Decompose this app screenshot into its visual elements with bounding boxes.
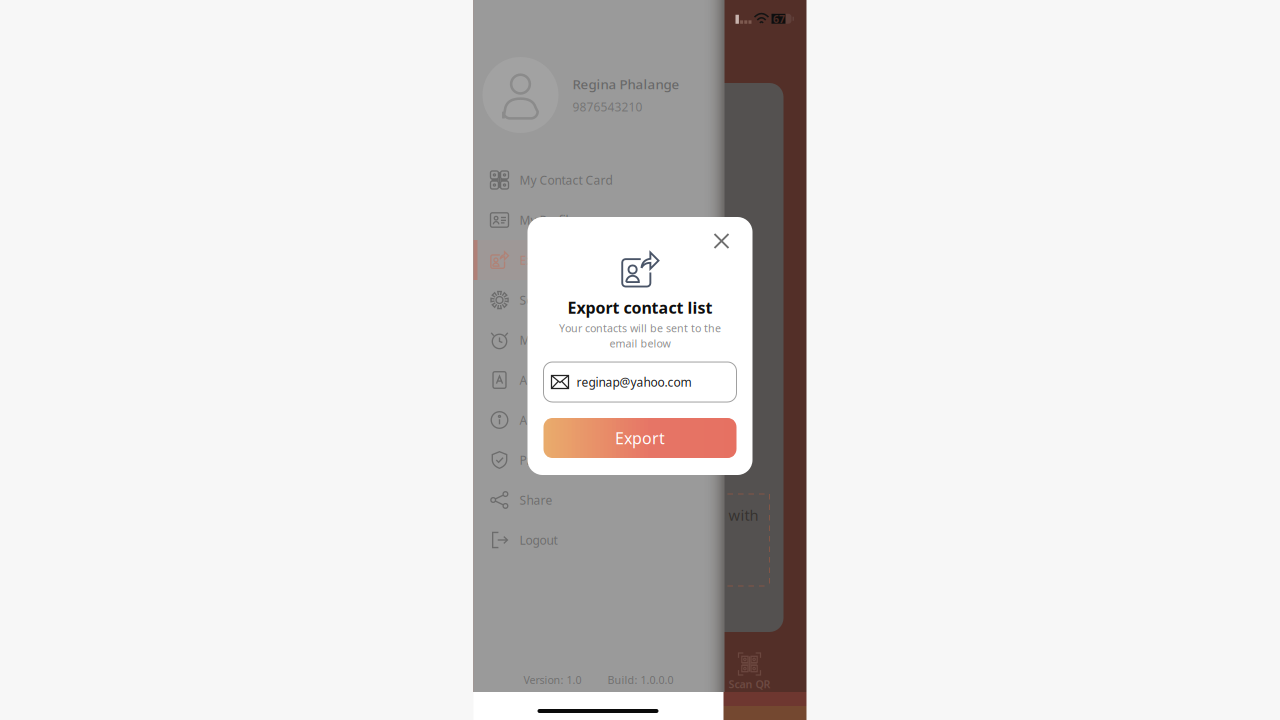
staticText: Scan QR — [728, 677, 770, 691]
staticText: Your contacts will be sent to the — [559, 321, 721, 335]
button[interactable]: App Tutorial — [473, 360, 723, 400]
staticText: Logout — [519, 532, 557, 548]
staticText: 67 — [773, 12, 785, 26]
button[interactable]: My Reminders — [473, 320, 723, 360]
staticText: 9876543210 — [572, 99, 642, 115]
staticText: Privacy Policy — [519, 452, 594, 468]
staticText: My Contact Card — [519, 172, 612, 188]
staticText: Share — [519, 492, 552, 508]
staticText: Build: 1.0.0.0 — [607, 673, 673, 687]
button[interactable]: My Profile — [473, 200, 723, 240]
button[interactable]: My Contact Card — [473, 160, 723, 200]
button[interactable]: Settings — [473, 280, 723, 320]
staticText: My Profile — [519, 212, 575, 228]
button[interactable]: About Us — [473, 400, 723, 440]
staticText: Settings — [519, 292, 564, 308]
button[interactable]: Logout — [473, 520, 723, 560]
staticText: Version: 1.0 — [523, 673, 581, 687]
button[interactable]: Close dialog — [706, 226, 736, 256]
staticText: Share your contacts with — [589, 505, 758, 525]
staticText: reginap@yahoo.com — [576, 374, 691, 390]
staticText: Export — [615, 427, 665, 449]
staticText: Export contact list — [567, 297, 712, 318]
staticText: App Tutorial — [519, 372, 586, 388]
button[interactable]: Privacy Policy — [473, 440, 723, 480]
staticText: Export contacts — [519, 252, 605, 268]
staticText: email below — [609, 336, 670, 350]
button[interactable]: Share — [473, 480, 723, 520]
staticText: Regina Phalange — [572, 75, 679, 93]
staticText: My Reminders — [519, 332, 599, 348]
staticText: About Us — [519, 412, 570, 428]
button[interactable]: Export — [543, 418, 736, 458]
button[interactable]: Regina Phalange — [473, 57, 723, 133]
button[interactable]: Export contacts — [473, 240, 723, 280]
